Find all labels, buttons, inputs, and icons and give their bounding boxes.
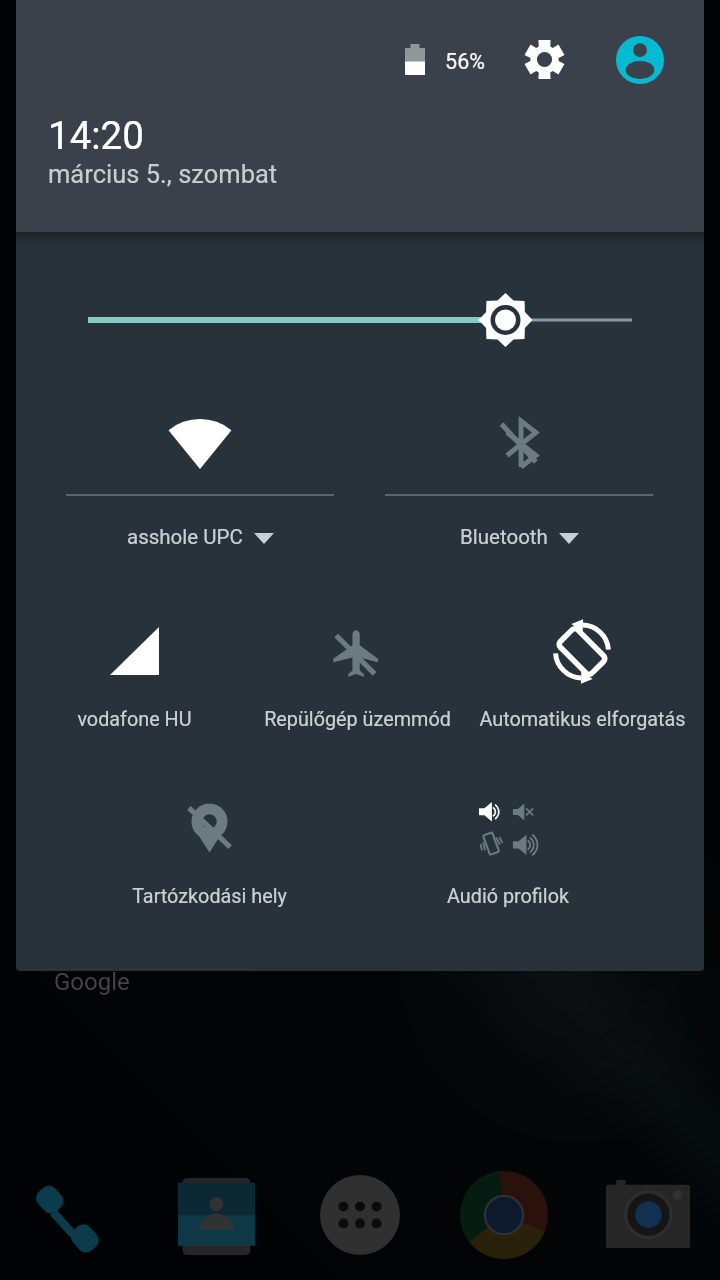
button[interactable]: Brightness bbox=[40, 284, 680, 356]
button[interactable]: Chrome bbox=[460, 1171, 548, 1259]
staticText: Automatikus elforgatás bbox=[479, 708, 686, 731]
button[interactable]: All apps bbox=[320, 1175, 400, 1255]
button[interactable]: Contacts bbox=[178, 1178, 255, 1255]
button[interactable]: Camera bbox=[605, 1180, 691, 1248]
staticText: vodafone HU bbox=[77, 708, 192, 731]
button[interactable] bbox=[388, 784, 628, 878]
staticText: 14:20 bbox=[48, 113, 144, 158]
staticText: Repülőgép üzemmód bbox=[264, 708, 451, 731]
button[interactable]: asshole UPC bbox=[66, 404, 334, 560]
staticText: 56% bbox=[445, 49, 485, 74]
button[interactable]: Bluetooth bbox=[385, 404, 653, 560]
button[interactable]: Phone bbox=[28, 1171, 116, 1259]
staticText: Audió profilok bbox=[447, 885, 569, 908]
button[interactable] bbox=[245, 607, 469, 745]
staticText: Google bbox=[54, 968, 130, 996]
staticText: március 5., szombat bbox=[48, 159, 278, 189]
staticText: asshole UPC bbox=[127, 525, 243, 549]
button[interactable] bbox=[470, 607, 694, 745]
button[interactable]: User profile bbox=[612, 32, 668, 88]
button[interactable] bbox=[22, 607, 246, 745]
staticText: Bluetooth bbox=[460, 525, 548, 549]
button[interactable] bbox=[97, 785, 321, 922]
button[interactable]: Settings bbox=[516, 31, 572, 87]
staticText: Tartózkodási hely bbox=[132, 885, 287, 908]
